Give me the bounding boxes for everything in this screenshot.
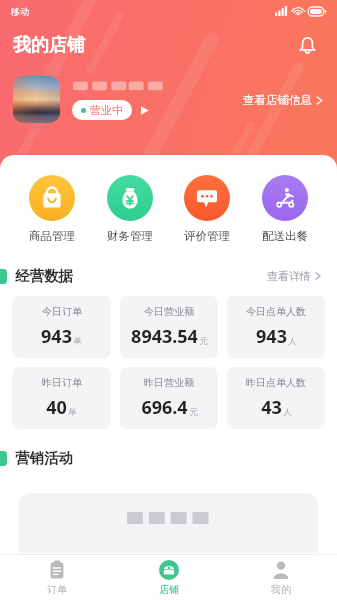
- button[interactable]: 切换营业状态: [139, 105, 150, 116]
- button[interactable]: 查看店铺信息: [241, 89, 326, 111]
- staticText: 今日点单人数: [246, 305, 306, 318]
- button[interactable]: 昨日点单人数: [227, 367, 325, 429]
- staticText: 今日订单: [42, 305, 82, 318]
- button[interactable]: 营业中: [72, 100, 132, 120]
- staticText: 配送出餐: [262, 229, 308, 243]
- button[interactable]: 今日营业额: [120, 296, 218, 358]
- staticText: 评价管理: [184, 229, 230, 243]
- staticText: 943: [41, 324, 72, 349]
- button[interactable]: 配送出餐: [254, 173, 316, 245]
- button[interactable]: 订单: [0, 555, 113, 600]
- button[interactable]: [13, 76, 60, 123]
- button[interactable]: 财务管理: [99, 173, 161, 245]
- button[interactable]: 昨日营业额: [120, 367, 218, 429]
- button[interactable]: 商品管理: [21, 173, 83, 245]
- staticText: 元: [189, 407, 198, 418]
- button[interactable]: 评价管理: [176, 173, 238, 245]
- button[interactable]: 店铺: [113, 555, 225, 600]
- staticText: 昨日点单人数: [246, 376, 306, 389]
- button[interactable]: 今日点单人数: [227, 296, 325, 358]
- staticText: 查看详情: [267, 269, 311, 283]
- staticText: 元: [199, 336, 208, 347]
- staticText: 经营数据: [15, 267, 73, 285]
- staticText: 单: [73, 336, 82, 347]
- button[interactable]: 今日订单: [12, 296, 111, 358]
- button[interactable]: 昨日订单: [12, 367, 111, 429]
- staticText: 我的: [271, 583, 291, 596]
- staticText: 我的店铺: [13, 34, 85, 57]
- staticText: 移动: [11, 6, 29, 17]
- staticText: 696.4: [141, 395, 188, 420]
- staticText: 人: [288, 336, 297, 347]
- staticText: 店铺: [159, 583, 179, 596]
- staticText: 查看店铺信息: [243, 93, 312, 107]
- staticText: 商品管理: [29, 229, 75, 243]
- staticText: 昨日订单: [42, 376, 82, 389]
- staticText: 营销活动: [15, 449, 73, 467]
- button[interactable]: 通知: [290, 28, 324, 62]
- staticText: 单: [68, 407, 77, 418]
- button[interactable]: [19, 493, 318, 553]
- staticText: 昨日营业额: [144, 376, 194, 389]
- staticText: 40: [46, 395, 67, 420]
- staticText: 人: [283, 407, 292, 418]
- staticText: 今日营业额: [144, 305, 194, 318]
- staticText: 43: [261, 395, 282, 420]
- staticText: 订单: [47, 583, 67, 596]
- staticText: 943: [256, 324, 287, 349]
- staticText: 财务管理: [107, 229, 153, 243]
- button[interactable]: 查看详情: [265, 265, 324, 287]
- button[interactable]: 我的: [225, 555, 337, 600]
- staticText: 8943.54: [131, 324, 198, 349]
- staticText: 营业中: [90, 103, 123, 117]
